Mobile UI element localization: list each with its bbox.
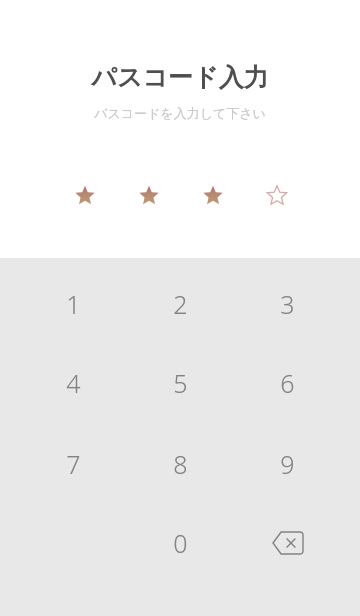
button[interactable]: 2 bbox=[127, 264, 234, 343]
button[interactable]: 8 bbox=[127, 424, 234, 503]
button[interactable]: 5 bbox=[127, 343, 234, 422]
button[interactable]: 7 bbox=[20, 424, 127, 503]
staticText: パスコード入力 bbox=[91, 62, 269, 93]
staticText: 8 bbox=[173, 447, 188, 481]
staticText: パスコードを入力して下さい bbox=[94, 105, 266, 121]
staticText: 7 bbox=[66, 447, 81, 481]
staticText: 0 bbox=[173, 526, 188, 560]
staticText: 9 bbox=[280, 447, 295, 481]
button[interactable]: 9 bbox=[234, 424, 341, 503]
staticText: 2 bbox=[173, 287, 188, 321]
button[interactable]: 4 bbox=[20, 343, 127, 422]
staticText: 5 bbox=[173, 366, 188, 400]
staticText: 3 bbox=[280, 287, 295, 321]
staticText: 1 bbox=[66, 287, 81, 321]
button[interactable]: 6 bbox=[234, 343, 341, 422]
button[interactable]: 1 bbox=[20, 264, 127, 343]
button[interactable]: 0 bbox=[127, 503, 234, 582]
button[interactable]: Delete bbox=[234, 503, 341, 582]
staticText: 4 bbox=[66, 366, 81, 400]
button[interactable]: 3 bbox=[234, 264, 341, 343]
other: Passcode progress 3 of 4 bbox=[0, 178, 360, 214]
staticText: 6 bbox=[280, 366, 295, 400]
